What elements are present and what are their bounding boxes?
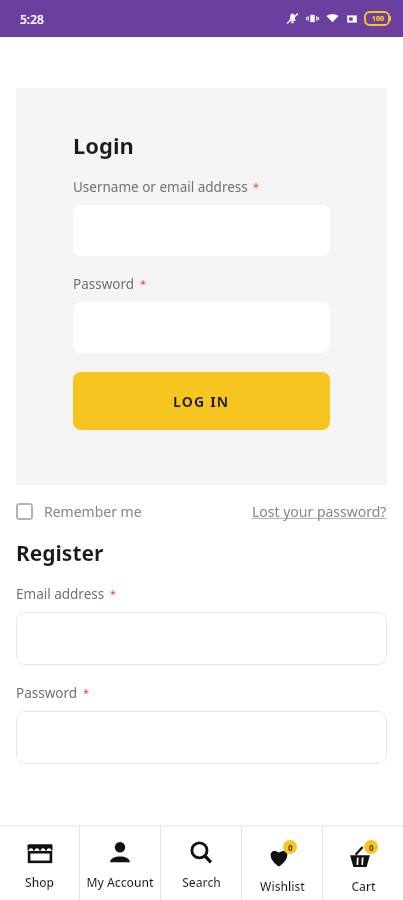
other: Cart xyxy=(348,840,378,870)
button[interactable]: Search xyxy=(161,826,241,900)
staticText: Username or email address xyxy=(73,178,248,196)
button[interactable]: Cart xyxy=(323,826,403,900)
staticText: Remember me xyxy=(44,502,142,521)
button[interactable] xyxy=(16,711,387,764)
button[interactable]: Wishlist xyxy=(242,826,322,900)
staticText: Password xyxy=(73,275,135,293)
staticText: 5:28 xyxy=(20,11,44,27)
staticText: Search xyxy=(182,874,221,890)
staticText: LOG IN xyxy=(173,392,230,411)
staticText: 0 xyxy=(369,842,374,853)
other: My Account xyxy=(107,840,133,866)
staticText: Email address xyxy=(16,585,105,603)
staticText: Cart xyxy=(351,878,376,894)
staticText: My Account xyxy=(86,874,154,890)
button[interactable]: My Account xyxy=(80,826,160,900)
button[interactable] xyxy=(16,612,387,665)
other: Wishlist xyxy=(267,840,297,870)
staticText: Shop xyxy=(25,874,54,890)
button[interactable]: Remember me xyxy=(16,502,142,521)
staticText: 0 xyxy=(288,842,293,853)
button[interactable]: Lost your password? xyxy=(252,502,387,521)
staticText: Lost your password? xyxy=(252,502,387,521)
other: Shop xyxy=(27,840,53,866)
staticText: * xyxy=(253,179,260,194)
staticText: Register xyxy=(16,539,104,568)
staticText: Login xyxy=(73,130,134,160)
staticText: Wishlist xyxy=(260,878,305,894)
button[interactable]: Shop xyxy=(0,826,79,900)
staticText: Password xyxy=(16,684,78,702)
staticText: * xyxy=(83,685,90,700)
button[interactable]: LOG IN xyxy=(73,372,330,430)
staticText: * xyxy=(110,586,117,601)
other: Search xyxy=(188,840,214,866)
staticText: 100 xyxy=(372,14,385,24)
staticText: * xyxy=(140,276,147,291)
